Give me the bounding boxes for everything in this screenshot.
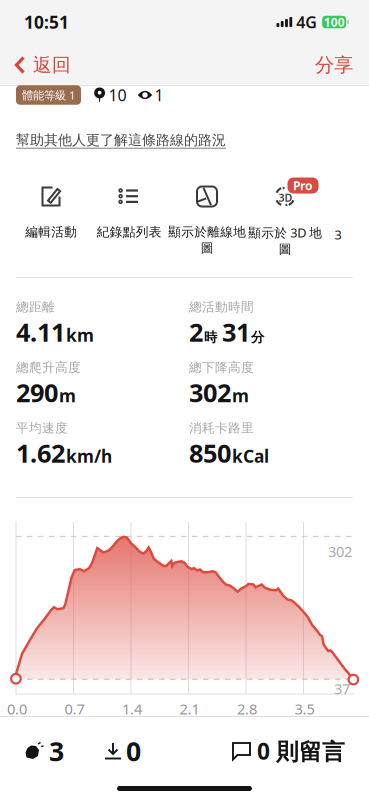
staticText: 302 [189,375,231,409]
staticText: 100 [324,14,345,30]
staticText: 消耗卡路里 [189,420,254,436]
button[interactable]: 分享 [299,44,369,86]
staticText: 850 [189,436,231,470]
button[interactable]: 顯示於離線地圖 [168,186,246,260]
staticText: 顯示於離線地圖 [168,224,246,256]
button[interactable]: More options [324,186,352,300]
staticText: km [66,323,94,346]
staticText: 0.7 [64,699,84,718]
staticText: m [232,384,249,407]
staticText: 總下降高度 [189,359,254,375]
staticText: 4G [296,11,317,33]
staticText: 0.0 [7,699,27,718]
staticText: 總距離 [16,299,55,315]
staticText: 3 [334,226,341,243]
button[interactable]: 返回 [0,44,83,86]
staticText: km/h [66,444,112,467]
staticText: 3.5 [294,699,314,718]
staticText: 37 [334,679,350,698]
staticText: 10 [108,84,126,106]
staticText: 0 [126,733,141,769]
staticText: 分 [251,329,264,346]
staticText: 302 [328,541,352,561]
staticText: 幫助其他人更了解這條路線的路況 [16,131,226,149]
staticText: 顯示於 3D 地圖 [248,224,322,257]
staticText: 編輯活動 [25,224,77,240]
staticText: 2 [189,315,203,349]
staticText: 分享 [315,53,353,77]
staticText: 平均速度 [16,420,68,436]
staticText: 10:51 [24,10,69,33]
staticText: 總活動時間 [189,299,254,315]
staticText: 31 [222,315,250,349]
staticText: 返回 [33,53,71,77]
staticText: 體能等級 1 [22,87,75,103]
staticText: 1 [154,84,163,106]
button[interactable]: 0 則留言 [229,727,348,775]
staticText: 4.11 [16,315,65,349]
staticText: 290 [16,375,58,409]
button[interactable]: 0 [101,724,144,778]
staticText: 紀錄點列表 [96,224,161,240]
staticText: 3D [278,191,292,205]
staticText: 總爬升高度 [16,359,81,375]
staticText: 2.1 [179,699,199,718]
button[interactable]: 幫助其他人更了解這條路線的路況 [0,128,369,152]
staticText: 2.8 [237,699,257,718]
button[interactable]: 編輯活動 [12,186,90,260]
button[interactable]: 紀錄點列表 [90,186,168,260]
staticText: 3 [49,733,64,769]
button[interactable]: 3 [22,724,67,778]
staticText: 0 則留言 [257,736,345,766]
staticText: 時 [204,329,217,346]
staticText: kCal [232,444,269,467]
staticText: 1.4 [122,699,142,718]
staticText: 1.62 [16,436,65,470]
staticText: Pro [293,177,313,193]
staticText: m [59,384,76,407]
button[interactable]: 3D [246,186,324,260]
